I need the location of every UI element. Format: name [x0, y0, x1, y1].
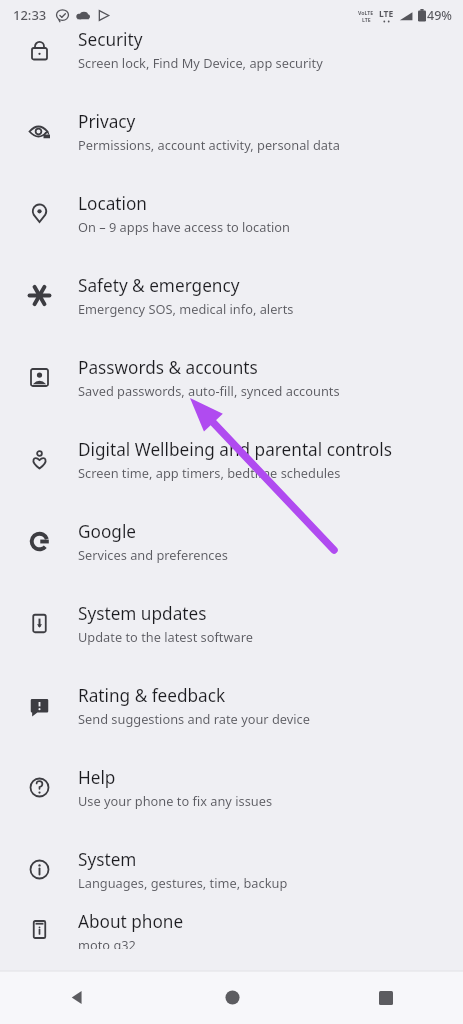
button[interactable]: Passwords & accounts [0, 336, 463, 418]
button[interactable]: Safety & emergency [0, 254, 463, 336]
staticText: Location [78, 192, 147, 215]
staticText: Help [78, 766, 116, 789]
staticText: Use your phone to fix any issues [78, 792, 273, 809]
button[interactable]: Help [0, 746, 463, 828]
button[interactable]: Location [0, 172, 463, 254]
staticText: Rating & feedback [78, 684, 226, 707]
staticText: Google [78, 520, 137, 543]
staticText: Safety & emergency [78, 274, 240, 297]
staticText: System updates [78, 602, 207, 625]
staticText: Security [78, 28, 143, 51]
button[interactable]: System [0, 828, 463, 910]
staticText: Send suggestions and rate your device [78, 710, 310, 727]
staticText: Update to the latest software [78, 628, 253, 645]
staticText: Passwords & accounts [78, 356, 258, 379]
button[interactable]: Digital Wellbeing and parental controls [0, 418, 463, 500]
button[interactable]: Back [0, 971, 155, 1024]
button[interactable]: About phone [0, 910, 463, 949]
button[interactable]: Home [155, 971, 309, 1024]
staticText: Screen lock, Find My Device, app securit… [78, 54, 323, 71]
button[interactable]: Rating & feedback [0, 664, 463, 746]
staticText: VoLTE [358, 9, 374, 16]
button[interactable]: Google [0, 500, 463, 582]
button[interactable]: Recent apps [309, 971, 463, 1024]
staticText: Emergency SOS, medical info, alerts [78, 300, 294, 317]
staticText: Permissions, account activity, personal … [78, 136, 340, 153]
staticText: On – 9 apps have access to location [78, 218, 291, 235]
staticText: Services and preferences [78, 546, 228, 563]
button[interactable]: System updates [0, 582, 463, 664]
staticText: Saved passwords, auto-fill, synced accou… [78, 382, 340, 399]
button[interactable]: Privacy [0, 90, 463, 172]
button[interactable]: Security [0, 8, 463, 90]
staticText: moto g32 [78, 936, 136, 949]
staticText: About phone [78, 910, 184, 933]
staticText: LTE [362, 16, 371, 23]
staticText: 49% [427, 7, 452, 24]
staticText: 12:33 [13, 6, 47, 24]
staticText: LTE [379, 8, 394, 20]
staticText: Screen time, app timers, bedtime schedul… [78, 464, 341, 481]
staticText: System [78, 848, 137, 871]
staticText: Privacy [78, 110, 136, 133]
staticText: Digital Wellbeing and parental controls [78, 438, 392, 461]
staticText: Languages, gestures, time, backup [78, 874, 288, 891]
